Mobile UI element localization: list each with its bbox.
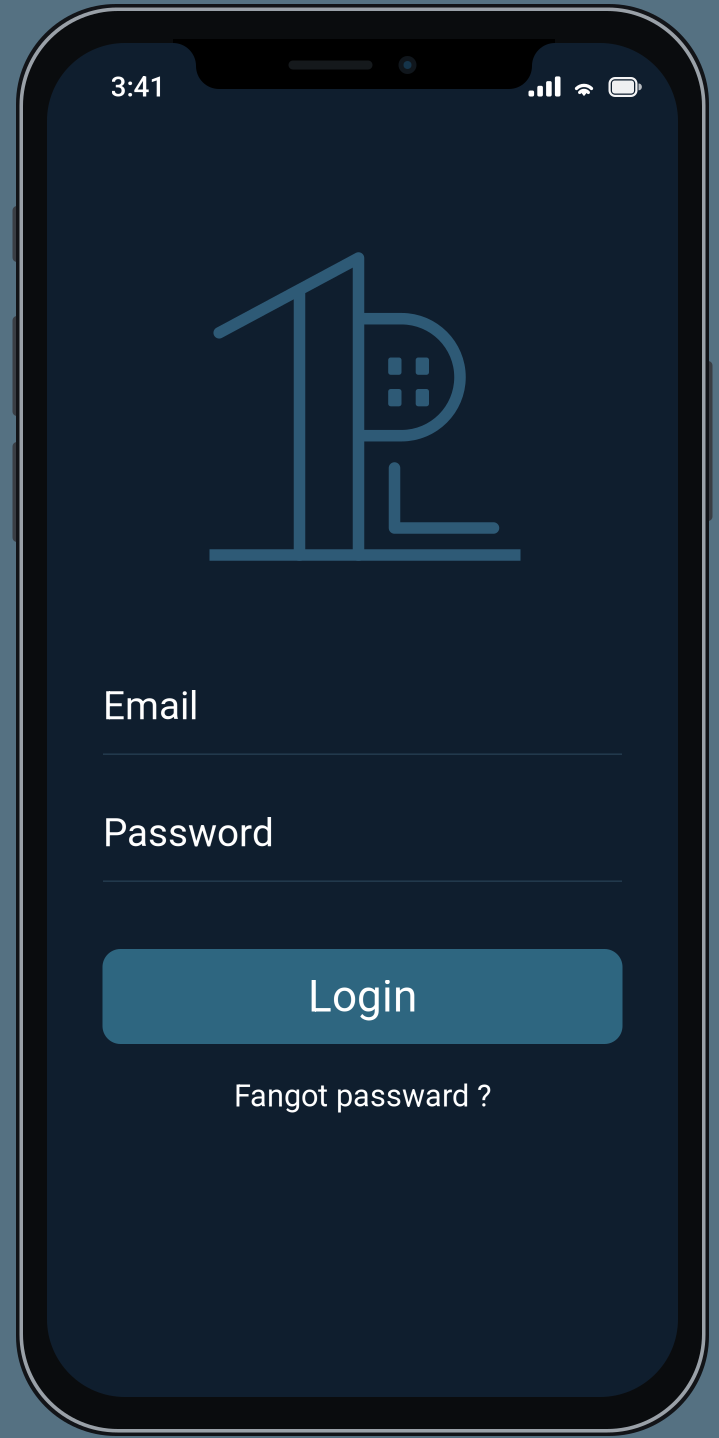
button[interactable]: Email [103, 679, 622, 755]
staticText: 3:41 [110, 71, 165, 103]
staticText: Login [308, 971, 417, 1022]
staticText: Email [103, 683, 198, 729]
staticText: Password [103, 810, 274, 856]
button[interactable]: Fangot passward ? [212, 1076, 512, 1116]
button[interactable]: Login [102, 949, 622, 1044]
button[interactable]: Password [103, 806, 622, 882]
staticText: Fangot passward ? [234, 1078, 491, 1114]
